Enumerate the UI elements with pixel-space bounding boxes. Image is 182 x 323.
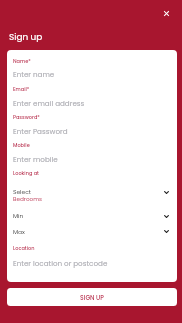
button[interactable]: [7, 84, 177, 110]
staticText: SIGN UP: [80, 294, 104, 303]
button[interactable]: SIGN UP: [7, 288, 177, 306]
button[interactable]: Close: [157, 4, 176, 23]
button[interactable]: [7, 112, 177, 138]
staticText: Bedrooms: [13, 195, 43, 203]
staticText: Sign up: [9, 31, 43, 43]
staticText: Name*: [13, 58, 31, 65]
staticText: Enter Password: [13, 126, 68, 136]
staticText: Select: [13, 188, 31, 196]
staticText: Enter name: [13, 69, 55, 79]
staticText: Password*: [13, 114, 40, 121]
button[interactable]: [7, 208, 177, 222]
staticText: Enter location or postcode: [13, 258, 108, 268]
button[interactable]: [7, 56, 177, 82]
button[interactable]: [7, 140, 177, 166]
staticText: Location: [13, 245, 35, 252]
button[interactable]: [7, 184, 177, 202]
staticText: Max: [13, 228, 25, 236]
staticText: Mobile: [13, 142, 30, 149]
staticText: Min: [13, 212, 24, 220]
staticText: Email*: [13, 86, 30, 93]
button[interactable]: Select minimum price: [161, 211, 172, 222]
button[interactable]: [7, 243, 177, 269]
button[interactable]: Select maximum price: [161, 226, 172, 237]
button[interactable]: Select bedrooms: [161, 187, 172, 198]
staticText: Enter mobile: [13, 154, 58, 164]
staticText: Looking at: [13, 170, 39, 177]
staticText: Enter email address: [13, 98, 85, 108]
button[interactable]: [7, 224, 177, 238]
